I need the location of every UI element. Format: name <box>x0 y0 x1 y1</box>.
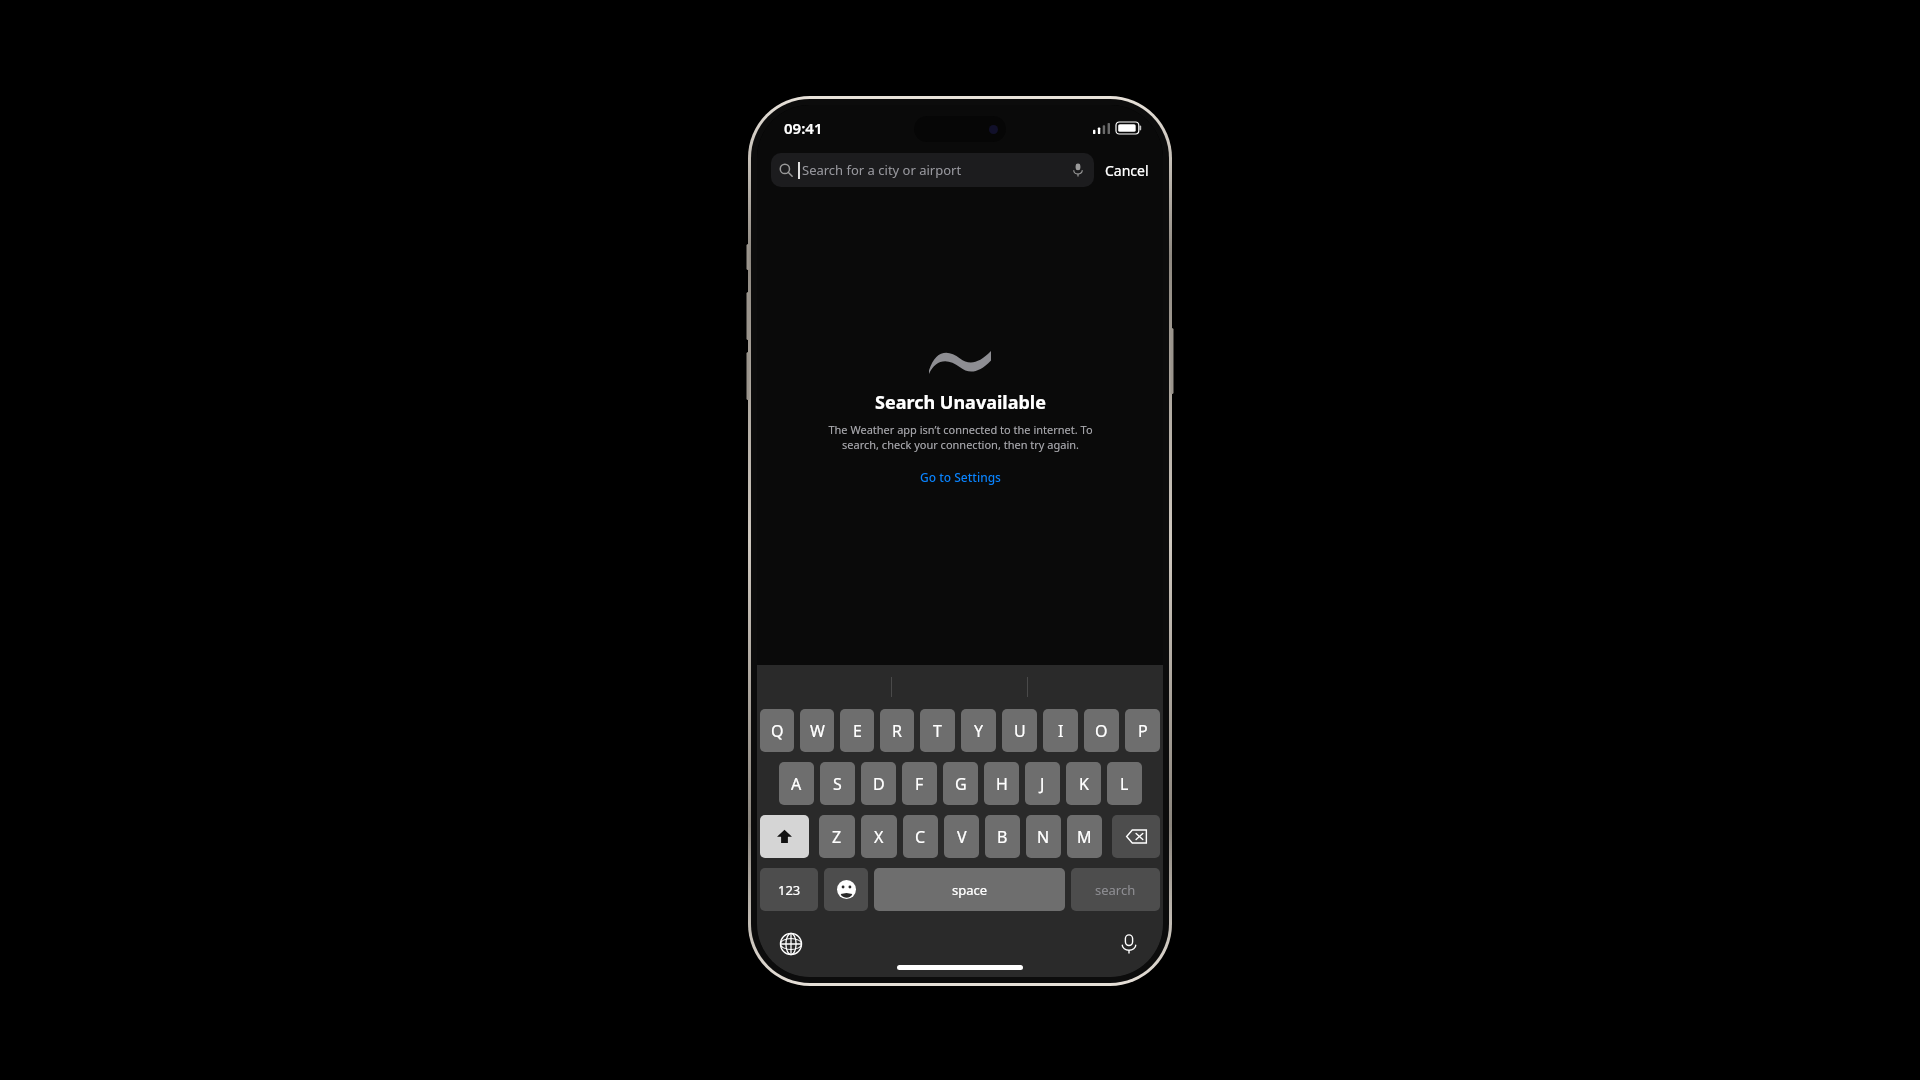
button[interactable]: A <box>779 762 814 805</box>
button[interactable]: X <box>861 815 897 858</box>
staticText: Cancel <box>1105 161 1149 180</box>
button[interactable]: W <box>800 709 834 752</box>
staticText: A <box>791 773 802 795</box>
staticText: Q <box>771 720 784 742</box>
button[interactable]: B <box>985 815 1020 858</box>
button[interactable]: Y <box>961 709 996 752</box>
staticText: 123 <box>778 881 801 899</box>
staticText: Go to Settings <box>920 469 1001 485</box>
button[interactable]: Cancel <box>1103 157 1151 184</box>
button[interactable]: Backspace <box>1112 815 1160 858</box>
staticText: D <box>873 773 885 795</box>
staticText: N <box>1037 826 1050 848</box>
button[interactable]: space <box>874 868 1065 911</box>
button[interactable]: D <box>861 762 896 805</box>
button[interactable]: K <box>1066 762 1101 805</box>
button[interactable]: O <box>1084 709 1119 752</box>
button[interactable]: F <box>902 762 937 805</box>
staticText: S <box>833 773 842 795</box>
button[interactable]: H <box>984 762 1019 805</box>
staticText: I <box>1058 720 1064 742</box>
button[interactable]: Search for a city or airport <box>771 153 1094 187</box>
button[interactable]: U <box>1002 709 1037 752</box>
staticText: M <box>1077 826 1092 848</box>
button[interactable]: Q <box>760 709 794 752</box>
button[interactable]: Emoji <box>824 868 868 911</box>
staticText: C <box>915 826 926 848</box>
staticText: H <box>996 773 1008 795</box>
staticText: B <box>997 826 1008 848</box>
button[interactable]: 123 <box>760 868 818 911</box>
button[interactable]: C <box>903 815 938 858</box>
button[interactable]: I <box>1043 709 1078 752</box>
staticText: Search Unavailable <box>875 390 1046 415</box>
staticText: P <box>1138 720 1148 742</box>
staticText: J <box>1040 773 1045 795</box>
button[interactable]: N <box>1026 815 1061 858</box>
button[interactable]: Shift <box>760 815 809 858</box>
staticText: V <box>957 826 967 848</box>
staticText: U <box>1014 720 1026 742</box>
staticText: space <box>952 881 988 899</box>
button[interactable]: Dictate <box>1070 162 1086 178</box>
button[interactable]: T <box>920 709 955 752</box>
button[interactable]: J <box>1025 762 1060 805</box>
button[interactable]: S <box>820 762 855 805</box>
staticText: O <box>1095 720 1108 742</box>
staticText: L <box>1120 773 1129 795</box>
staticText: X <box>874 826 884 848</box>
button[interactable]: V <box>944 815 979 858</box>
button[interactable]: Go to Settings <box>912 466 1009 488</box>
button[interactable]: P <box>1125 709 1160 752</box>
staticText: search <box>1095 881 1136 899</box>
button[interactable]: Change keyboard <box>779 932 803 956</box>
staticText: Z <box>832 826 842 848</box>
button[interactable]: Z <box>819 815 855 858</box>
staticText: T <box>933 720 942 742</box>
button[interactable]: search <box>1071 868 1160 911</box>
staticText: R <box>892 720 902 742</box>
staticText: The Weather app isn’t connected to the i… <box>828 422 1093 452</box>
staticText: F <box>915 773 924 795</box>
button[interactable]: L <box>1107 762 1142 805</box>
staticText: K <box>1079 773 1089 795</box>
button[interactable]: M <box>1067 815 1102 858</box>
staticText: E <box>853 720 862 742</box>
staticText: Y <box>974 720 984 742</box>
button[interactable]: R <box>880 709 914 752</box>
staticText: 09:41 <box>784 118 823 138</box>
button[interactable]: Dictate <box>1117 932 1141 956</box>
staticText: Search for a city or airport <box>802 161 962 179</box>
staticText: G <box>955 773 967 795</box>
staticText: W <box>810 720 825 742</box>
button[interactable]: G <box>943 762 978 805</box>
button[interactable]: E <box>840 709 874 752</box>
